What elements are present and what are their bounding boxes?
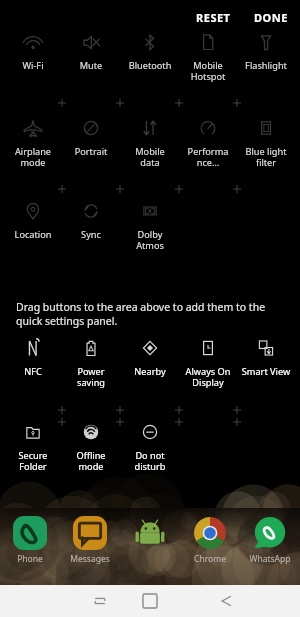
staticText: Airplane mode	[4, 145, 62, 169]
button[interactable]: Offline mode	[62, 421, 120, 477]
button[interactable]: Do not disturb	[121, 421, 179, 477]
button[interactable]: Blue light filter	[237, 117, 295, 173]
button[interactable]: Airplane mode	[4, 117, 62, 173]
staticText: Nearby	[121, 365, 179, 378]
button[interactable]: Performa nce…	[179, 117, 237, 173]
staticText: Dolby Atmos	[121, 228, 179, 252]
staticText: Wi-Fi	[4, 59, 62, 72]
staticText	[125, 553, 175, 565]
staticText: Phone	[5, 553, 55, 565]
staticText: Flashlight	[237, 59, 295, 72]
button[interactable]: Messages	[65, 514, 115, 570]
button[interactable]: Always On Display	[179, 337, 237, 393]
staticText: Performa nce…	[179, 145, 237, 169]
staticText: DONE	[254, 10, 288, 25]
staticText: Bluetooth	[121, 59, 179, 72]
button[interactable]: Mobile Hotspot	[179, 31, 237, 87]
staticText: Smart View	[237, 365, 295, 378]
staticText: Chrome	[185, 553, 235, 565]
button[interactable]: Wi-Fi	[4, 31, 62, 87]
button[interactable]: RESET	[188, 5, 239, 29]
staticText: Messages	[65, 553, 115, 565]
button[interactable]: WhatsApp	[245, 514, 295, 570]
button[interactable]: Chrome	[185, 514, 235, 570]
button[interactable]: Secure Folder	[4, 421, 62, 477]
button[interactable]: Smart View	[237, 337, 295, 393]
staticText: Blue light filter	[237, 145, 295, 169]
button[interactable]: Phone	[5, 514, 55, 570]
button[interactable]: Portrait	[62, 117, 120, 173]
staticText: Sync	[62, 228, 120, 241]
staticText: RESET	[196, 10, 231, 25]
staticText: Drag buttons to the area above to add th…	[16, 300, 266, 328]
button[interactable]: DONE	[246, 5, 296, 29]
button[interactable]: Sync	[62, 200, 120, 256]
button[interactable]: Power saving	[62, 337, 120, 393]
button[interactable]: Mobile data	[121, 117, 179, 173]
staticText: Power saving	[62, 365, 120, 389]
button[interactable]: Recents	[74, 585, 126, 617]
button[interactable]: Location	[4, 200, 62, 256]
staticText: WhatsApp	[245, 553, 295, 565]
staticText: Secure Folder	[4, 449, 62, 473]
button[interactable]: Flashlight	[237, 31, 295, 87]
button[interactable]: NFC	[4, 337, 62, 393]
staticText: Mobile data	[121, 145, 179, 169]
button[interactable]: Android	[125, 514, 175, 570]
button[interactable]: Nearby	[121, 337, 179, 393]
staticText: Offline mode	[62, 449, 120, 473]
staticText: Location	[4, 228, 62, 241]
button[interactable]: Mute	[62, 31, 120, 87]
button[interactable]: Dolby Atmos	[121, 200, 179, 256]
staticText: Portrait	[62, 145, 120, 158]
staticText: Mute	[62, 59, 120, 72]
staticText: Always On Display	[179, 365, 237, 389]
staticText: Do not disturb	[121, 449, 179, 473]
button[interactable]: Bluetooth	[121, 31, 179, 87]
button[interactable]: Back	[200, 585, 252, 617]
button[interactable]: Home	[124, 585, 176, 617]
staticText: Mobile Hotspot	[179, 59, 237, 83]
staticText: NFC	[4, 365, 62, 378]
